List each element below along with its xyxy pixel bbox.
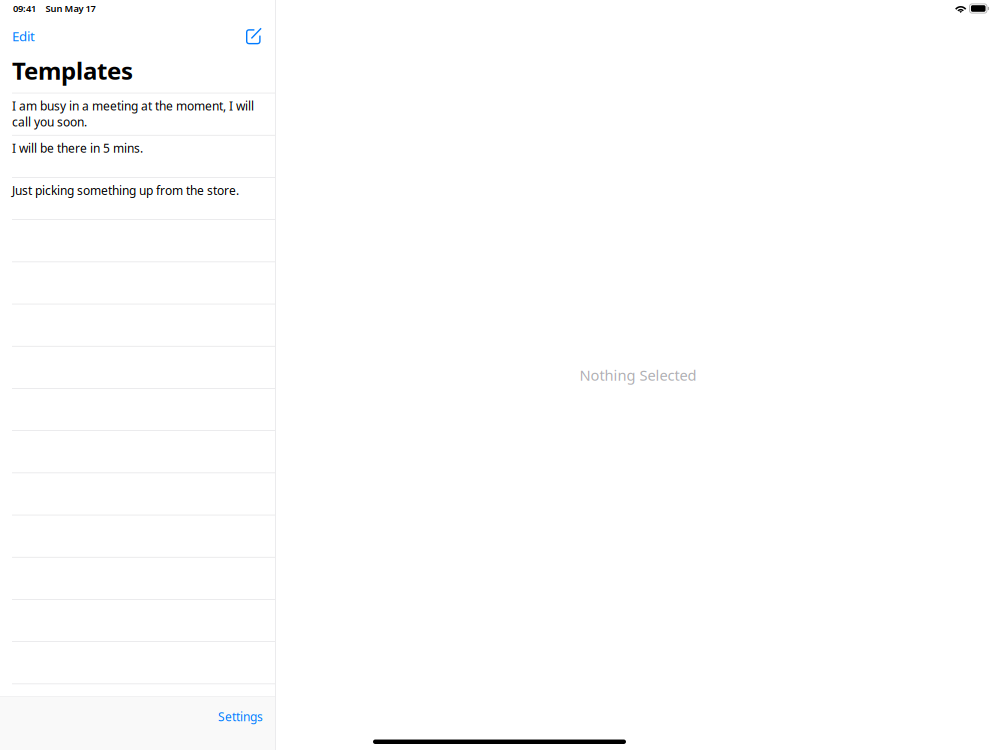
staticText: Settings — [218, 708, 263, 724]
button[interactable]: I am busy in a meeting at the moment, I … — [0, 93, 275, 136]
staticText: Templates — [12, 54, 133, 86]
button[interactable]: I will be there in 5 mins. — [0, 136, 275, 178]
button[interactable]: Just picking something up from the store… — [0, 178, 275, 220]
staticText: Just picking something up from the store… — [12, 182, 239, 198]
staticText: I will be there in 5 mins. — [12, 140, 143, 156]
staticText: Sun May 17 — [45, 2, 95, 15]
staticText: Nothing Selected — [579, 365, 696, 385]
button[interactable]: Compose — [246, 21, 275, 46]
staticText: Edit — [12, 27, 35, 45]
staticText: I am busy in a meeting at the moment, I … — [12, 98, 254, 130]
button[interactable]: Edit — [0, 19, 35, 49]
button[interactable]: Settings — [218, 696, 275, 750]
staticText: 09:41 — [13, 2, 36, 15]
